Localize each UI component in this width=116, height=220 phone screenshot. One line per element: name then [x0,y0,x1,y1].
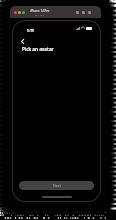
staticText: iOS 16.4 [35,13,45,16]
staticText: Pick an avatar [22,46,54,52]
button[interactable]: Back [17,36,28,47]
button[interactable]: Toolbar action [75,9,80,16]
staticText: Next [53,183,61,188]
button[interactable]: Toolbar action [87,9,92,16]
staticText: 9:19 [27,28,34,33]
staticText: iPhone 14 Pro [30,9,50,13]
button[interactable]: Next [19,181,94,190]
button[interactable]: Toolbar action [81,9,86,16]
